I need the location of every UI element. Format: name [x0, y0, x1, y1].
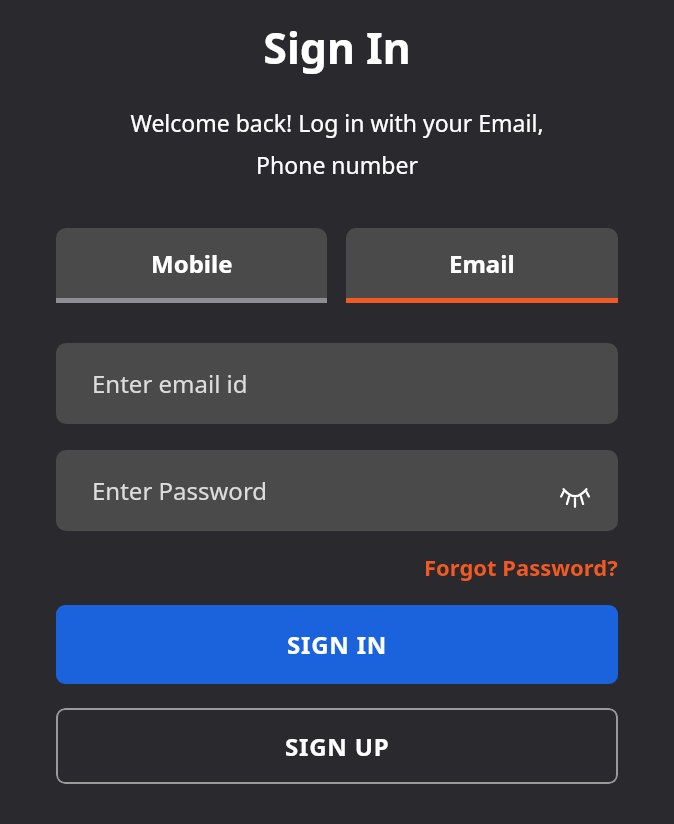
- staticText: Mobile: [151, 247, 233, 280]
- button[interactable]: Enter email id: [56, 343, 618, 424]
- staticText: Forgot Password?: [424, 552, 618, 582]
- button[interactable]: SIGN UP: [56, 708, 618, 784]
- staticText: SIGN UP: [285, 730, 390, 763]
- button[interactable]: Forgot Password?: [424, 552, 618, 582]
- staticText: Email: [449, 247, 515, 280]
- staticText: Sign In: [263, 18, 411, 77]
- staticText: Enter email id: [92, 367, 248, 400]
- button[interactable]: Show password: [558, 474, 592, 508]
- button[interactable]: Mobile: [56, 228, 327, 303]
- staticText: Welcome back! Log in with your Email, Ph…: [40, 107, 634, 181]
- button[interactable]: SIGN IN: [56, 605, 618, 684]
- button[interactable]: Email: [346, 228, 618, 303]
- staticText: Enter Password: [92, 474, 268, 507]
- button[interactable]: Enter Password: [56, 450, 618, 531]
- staticText: SIGN IN: [287, 628, 388, 661]
